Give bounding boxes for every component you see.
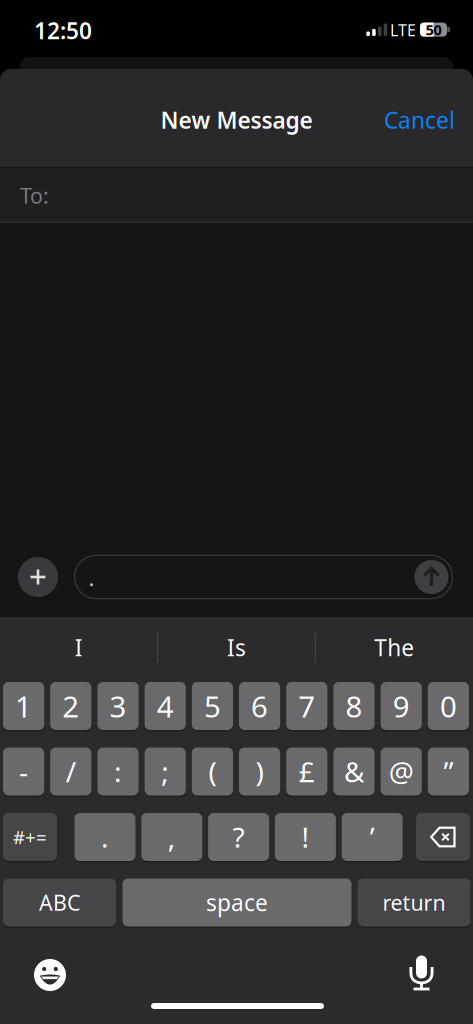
button[interactable]: return: [357, 878, 470, 926]
button[interactable]: ,: [141, 813, 202, 861]
staticText: /: [66, 753, 76, 790]
button[interactable]: ): [239, 747, 280, 795]
button[interactable]: Emoji: [33, 958, 67, 992]
button[interactable]: 4: [145, 682, 186, 730]
button[interactable]: &: [333, 747, 375, 795]
staticText: space: [206, 887, 268, 917]
staticText: 8: [345, 686, 362, 725]
staticText: Is: [227, 632, 246, 662]
staticText: @: [389, 753, 414, 790]
button[interactable]: ’: [342, 813, 403, 861]
staticText: 2: [62, 686, 79, 725]
staticText: 3: [109, 686, 126, 725]
button[interactable]: /: [50, 747, 91, 795]
button[interactable]: space: [122, 878, 351, 926]
button[interactable]: 5: [192, 682, 233, 730]
button[interactable]: To: [0, 168, 473, 223]
button[interactable]: £: [286, 747, 327, 795]
button[interactable]: Delete: [416, 813, 470, 861]
staticText: ABC: [39, 888, 80, 917]
staticText: -: [19, 753, 28, 790]
staticText: (: [208, 753, 216, 790]
button[interactable]: 1: [3, 682, 44, 730]
staticText: ,: [168, 818, 176, 856]
button[interactable]: ;: [145, 747, 186, 795]
staticText: 1: [15, 686, 32, 725]
button[interactable]: ”: [428, 747, 469, 795]
staticText: £: [299, 753, 315, 790]
button[interactable]: -: [3, 747, 44, 795]
staticText: 4: [157, 686, 174, 725]
staticText: 0: [440, 686, 457, 725]
button[interactable]: (: [192, 747, 233, 795]
staticText: 12:50: [34, 15, 92, 45]
staticText: ”: [443, 753, 453, 790]
staticText: ’: [370, 818, 375, 856]
button[interactable]: 9: [381, 682, 422, 730]
button[interactable]: 0: [428, 682, 469, 730]
button[interactable]: Send: [414, 560, 448, 594]
button[interactable]: Dictate: [409, 955, 433, 993]
staticText: ): [256, 753, 264, 790]
button[interactable]: .: [74, 813, 135, 861]
button[interactable]: Add attachment: [18, 557, 58, 597]
staticText: ;: [161, 753, 169, 790]
button[interactable]: 3: [97, 682, 139, 730]
staticText: Cancel: [384, 105, 455, 135]
button[interactable]: ABC: [3, 878, 116, 926]
staticText: To:: [20, 181, 49, 210]
button[interactable]: 8: [333, 682, 375, 730]
button[interactable]: The: [374, 632, 414, 662]
button[interactable]: #+=: [3, 813, 57, 861]
staticText: &: [344, 753, 364, 790]
button[interactable]: @: [381, 747, 422, 795]
staticText: ?: [233, 818, 245, 856]
button[interactable]: Is: [227, 632, 246, 662]
staticText: The: [374, 632, 414, 662]
button[interactable]: 7: [286, 682, 327, 730]
staticText: 5: [204, 686, 221, 725]
staticText: .: [101, 818, 109, 856]
staticText: New Message: [160, 105, 312, 135]
staticText: 50: [425, 20, 441, 39]
button[interactable]: !: [275, 813, 336, 861]
staticText: I: [75, 632, 83, 662]
staticText: 9: [393, 686, 410, 725]
button[interactable]: ?: [208, 813, 269, 861]
staticText: #+=: [13, 825, 47, 849]
staticText: 7: [298, 686, 315, 725]
button[interactable]: 6: [239, 682, 280, 730]
staticText: :: [114, 753, 122, 790]
button[interactable]: I: [75, 632, 83, 662]
button[interactable]: :: [97, 747, 139, 795]
staticText: return: [382, 888, 445, 917]
button[interactable]: Message: [74, 555, 453, 599]
staticText: 6: [251, 686, 268, 725]
button[interactable]: Cancel: [384, 105, 455, 135]
button[interactable]: 2: [50, 682, 91, 730]
staticText: LTE: [390, 19, 416, 41]
staticText: !: [301, 818, 309, 856]
